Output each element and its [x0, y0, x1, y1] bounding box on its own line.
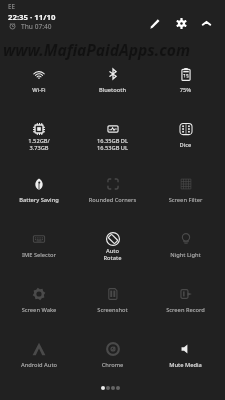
button[interactable]: Screenshot	[76, 284, 149, 339]
button[interactable]: Screen Wake	[2, 284, 76, 339]
staticText: IME Selector	[2, 251, 76, 259]
button[interactable]: Edit	[145, 14, 165, 34]
button[interactable]: Dice	[149, 119, 222, 174]
staticText: Android Auto	[2, 361, 76, 369]
staticText: Screen Filter	[149, 196, 222, 204]
staticText: 22:35 · 11/10	[8, 12, 56, 23]
staticText: 1.52GB/ 3.73GB	[2, 137, 76, 152]
staticText: Dice	[149, 141, 222, 149]
staticText: 75%	[149, 86, 222, 94]
button[interactable]: Android Auto	[2, 339, 76, 394]
button[interactable]: Chrome	[76, 339, 149, 394]
button[interactable]: 75%	[149, 64, 222, 119]
button[interactable]: Screen Record	[149, 284, 222, 339]
button[interactable]: Settings	[171, 13, 191, 33]
staticText: Auto Rotate	[76, 247, 149, 262]
button[interactable]: Collapse	[196, 13, 216, 33]
staticText: Screen Wake	[2, 306, 76, 314]
staticText: Night Light	[149, 251, 222, 259]
button[interactable]: Battery Saving	[2, 174, 76, 229]
staticText: Thu 07:40	[21, 22, 52, 31]
staticText: www.MafiaPaidApps.com	[3, 39, 191, 60]
staticText: EE	[8, 2, 15, 10]
button[interactable]: IME Selector	[2, 229, 76, 284]
button[interactable]: Screen Filter	[149, 174, 222, 229]
staticText: Bluetooth	[76, 86, 149, 94]
staticText: Wi-Fi	[2, 86, 76, 94]
staticText: Screen Record	[149, 306, 222, 314]
staticText: Mute Media	[149, 361, 222, 369]
staticText: Screenshot	[76, 306, 149, 314]
button[interactable]: Night Light	[149, 229, 222, 284]
button[interactable]: Wi-Fi	[2, 64, 76, 119]
staticText: Chrome	[76, 361, 149, 369]
button[interactable]: Rounded Corners	[76, 174, 149, 229]
staticText: Rounded Corners	[76, 196, 149, 204]
staticText: 16.35GB DL 16.53GB UL	[76, 137, 149, 152]
staticText: Battery Saving	[2, 196, 76, 204]
button[interactable]: 1.52GB/ 3.73GB	[2, 119, 76, 174]
button[interactable]: Bluetooth	[76, 64, 149, 119]
button[interactable]: 16.35GB DL 16.53GB UL	[76, 119, 149, 174]
button[interactable]: Auto Rotate	[76, 229, 149, 284]
button[interactable]: Mute Media	[149, 339, 222, 394]
